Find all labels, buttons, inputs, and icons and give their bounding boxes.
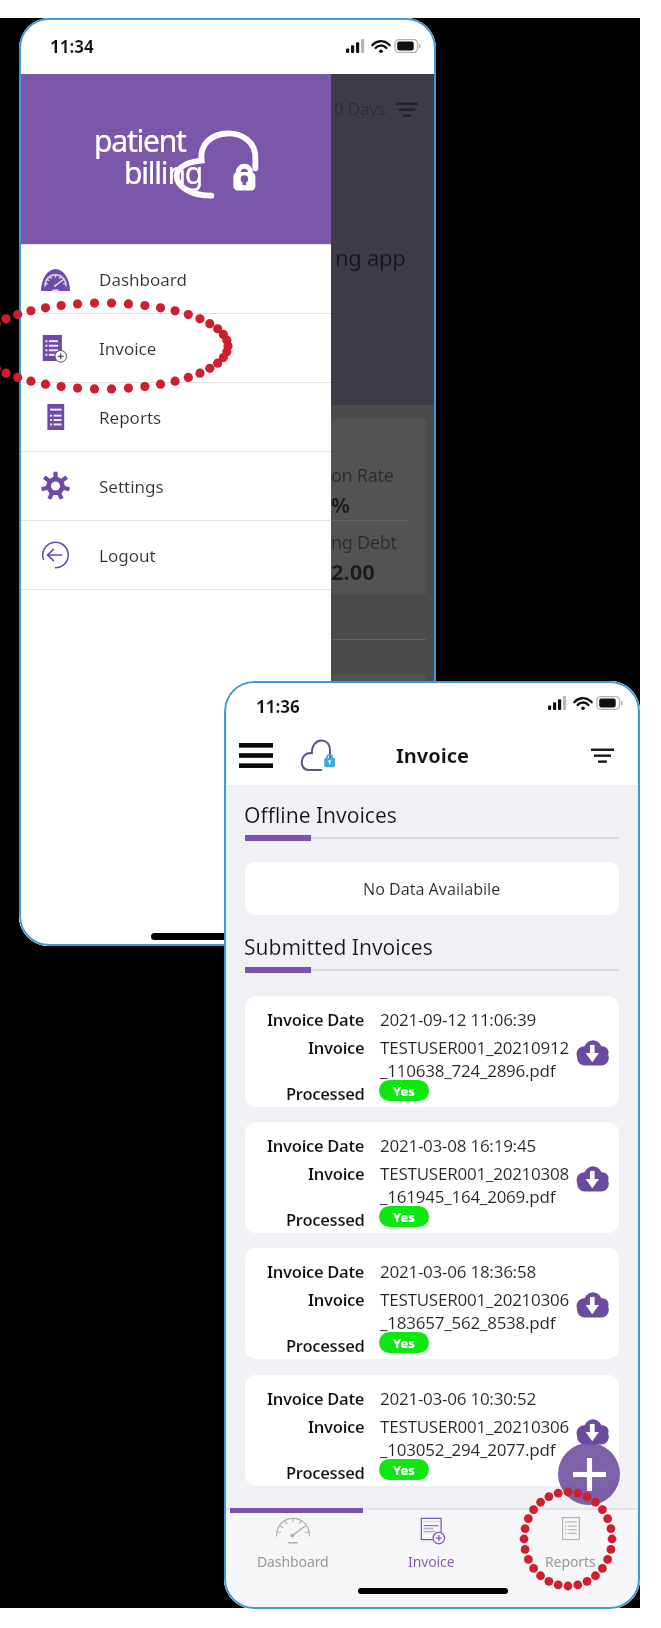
staticText: % <box>331 491 350 520</box>
staticText: ng app <box>335 242 406 272</box>
staticText: Processed <box>286 1082 365 1104</box>
staticText: 2021-03-06 10:30:52 <box>380 1387 536 1410</box>
staticText: _161945_164_2069.pdf <box>380 1185 556 1208</box>
button[interactable]: Logout <box>19 521 331 589</box>
staticText: 11:36 <box>256 695 300 718</box>
staticText: Invoice Date <box>267 1387 365 1409</box>
button[interactable]: Download invoice PDF <box>573 1032 613 1072</box>
button[interactable]: Invoice <box>362 1513 501 1573</box>
staticText: Dashboard <box>257 1552 329 1571</box>
staticText: Settings <box>99 475 164 498</box>
staticText: Yes <box>393 1082 415 1100</box>
staticText: Invoice Date <box>267 1008 365 1030</box>
staticText: on Rate <box>331 463 394 488</box>
staticText: Invoice <box>308 1288 365 1310</box>
staticText: billing <box>124 152 202 193</box>
staticText: TESTUSER001_20210308 <box>380 1162 569 1185</box>
staticText: 2.00 <box>331 556 375 586</box>
staticText: 11:34 <box>50 35 94 58</box>
staticText: _103052_294_2077.pdf <box>380 1438 556 1461</box>
button[interactable]: Dashboard <box>19 245 331 313</box>
staticText: Processed <box>286 1461 365 1483</box>
staticText: Yes <box>393 1334 415 1352</box>
staticText: Offline Invoices <box>244 801 397 830</box>
button[interactable]: Dashboard <box>224 1513 362 1573</box>
staticText: Invoice Date <box>267 1260 365 1282</box>
staticText: No Data Availabile <box>363 878 501 900</box>
staticText: TESTUSER001_20210306 <box>380 1288 569 1311</box>
staticText: Yes <box>393 1461 415 1479</box>
staticText: Yes <box>393 1208 415 1226</box>
staticText: Invoice <box>308 1162 365 1184</box>
button[interactable]: Open navigation menu <box>232 731 280 779</box>
staticText: Dashboard <box>99 268 188 291</box>
staticText: _183657_562_8538.pdf <box>380 1311 556 1334</box>
staticText: 2021-03-06 18:36:58 <box>380 1260 536 1283</box>
staticText: 2021-09-12 11:06:39 <box>380 1008 536 1031</box>
staticText: ng Debt <box>331 530 397 555</box>
staticText: Submitted Invoices <box>244 933 433 962</box>
button[interactable]: Download invoice PDF <box>573 1158 613 1198</box>
button[interactable]: Filter invoices <box>580 733 624 777</box>
staticText: Logout <box>99 544 156 567</box>
staticText: Invoice <box>99 337 157 360</box>
staticText: Processed <box>286 1208 365 1230</box>
staticText: _110638_724_2896.pdf <box>380 1059 556 1082</box>
staticText: patient <box>94 120 186 161</box>
button[interactable]: Invoice Date <box>245 1375 619 1486</box>
button[interactable]: Invoice Date <box>245 1248 619 1359</box>
staticText: Invoice Date <box>267 1134 365 1156</box>
button[interactable]: Invoice Date <box>245 996 619 1107</box>
staticText: Processed <box>286 1334 365 1356</box>
staticText: Reports <box>545 1552 596 1571</box>
staticText: Invoice <box>396 742 469 769</box>
staticText: Invoice <box>308 1415 365 1437</box>
staticText: TESTUSER001_20210912 <box>380 1036 569 1059</box>
button[interactable]: Reports <box>501 1513 640 1573</box>
staticText: Invoice <box>308 1036 365 1058</box>
button[interactable]: Settings <box>19 452 331 520</box>
button[interactable]: Invoice Date <box>245 1122 619 1233</box>
button[interactable]: Download invoice PDF <box>573 1284 613 1324</box>
staticText: TESTUSER001_20210306 <box>380 1415 569 1438</box>
staticText: Reports <box>99 406 162 429</box>
button[interactable]: Add invoice <box>558 1443 620 1505</box>
button[interactable]: Invoice <box>19 314 331 382</box>
staticText: 2021-03-08 16:19:45 <box>380 1134 536 1157</box>
button[interactable]: Reports <box>19 383 331 451</box>
staticText: 0 Days <box>334 97 386 120</box>
button[interactable]: No Data Availabile <box>245 862 619 915</box>
staticText: Invoice <box>408 1552 455 1571</box>
button[interactable]: Download invoice PDF <box>573 1411 613 1451</box>
